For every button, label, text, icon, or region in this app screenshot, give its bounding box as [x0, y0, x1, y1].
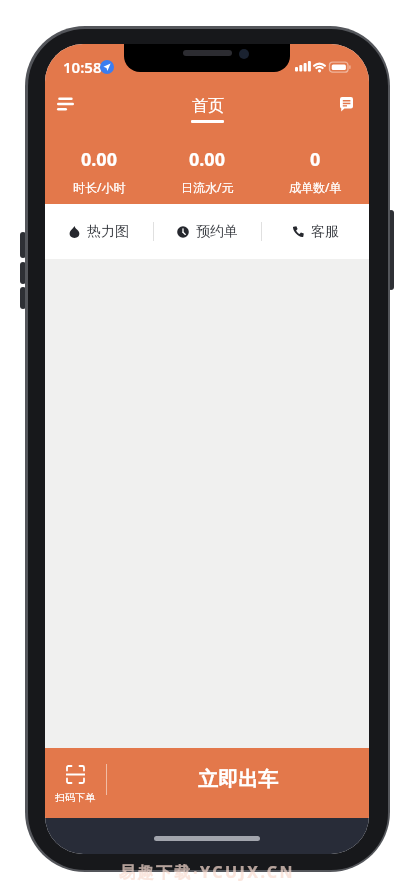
staticText: 成单数/单: [289, 179, 342, 195]
staticText: 0.00: [81, 147, 117, 172]
staticText: 日流水/元: [181, 179, 234, 195]
staticText: 扫码下单: [55, 791, 95, 804]
staticText: 0: [310, 147, 321, 172]
staticText: 易趣下载·YCUJX.CN: [119, 861, 296, 883]
button[interactable]: 热力图: [45, 204, 153, 259]
button[interactable]: 预约单: [154, 204, 261, 259]
button[interactable]: [334, 92, 362, 118]
button[interactable]: 首页: [191, 96, 224, 123]
button[interactable]: [51, 92, 83, 118]
button[interactable]: 立即出车: [107, 748, 369, 818]
staticText: 首页: [192, 96, 224, 116]
staticText: 时长/小时: [73, 179, 126, 195]
staticText: 10:58: [63, 57, 102, 77]
staticText: 预约单: [196, 223, 238, 241]
staticText: 立即出车: [198, 767, 278, 792]
staticText: 客服: [311, 223, 339, 241]
button[interactable]: 客服: [262, 204, 369, 259]
staticText: 0.00: [189, 147, 225, 172]
button[interactable]: 扫码下单: [51, 762, 99, 816]
staticText: 热力图: [87, 223, 129, 241]
